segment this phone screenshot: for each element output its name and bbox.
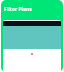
staticText: Filter Plans (4, 6, 32, 13)
